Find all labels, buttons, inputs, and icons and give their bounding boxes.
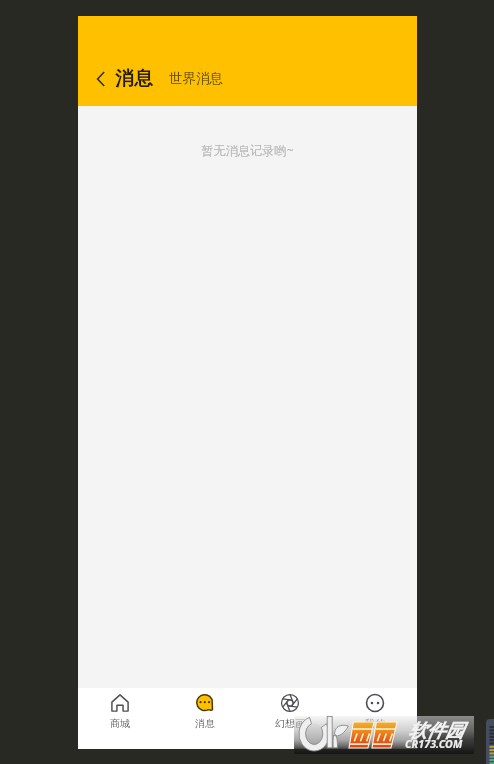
staticText: 消息	[195, 717, 215, 730]
staticText: 我的	[365, 717, 385, 730]
staticText: 软件园	[408, 719, 464, 742]
staticText: 商城	[110, 717, 130, 730]
button[interactable]: 商城	[78, 688, 162, 749]
button[interactable]: 幻想画	[247, 688, 332, 749]
staticText: 暂无消息记录哟~	[201, 142, 294, 159]
staticText: 幻想画	[275, 717, 305, 730]
button[interactable]: 我的	[332, 688, 417, 749]
button[interactable]: Back	[91, 68, 113, 90]
button[interactable]: 消息	[162, 688, 247, 749]
staticText: 消息	[115, 67, 153, 91]
staticText: CR173.COM	[405, 737, 463, 751]
staticText: 世界消息	[169, 70, 223, 87]
